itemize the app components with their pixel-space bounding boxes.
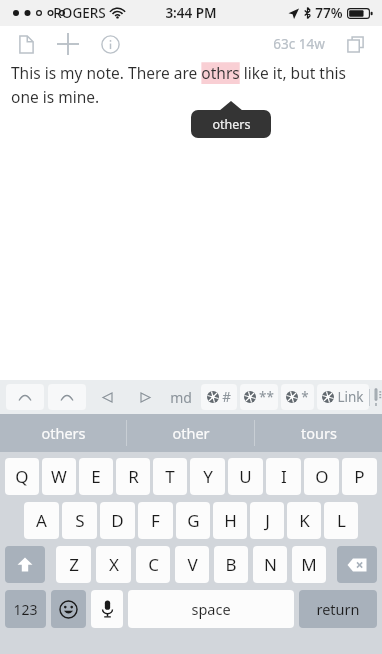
staticText: D bbox=[111, 509, 124, 532]
button[interactable]: Z bbox=[56, 546, 91, 583]
staticText: V bbox=[187, 553, 198, 576]
button[interactable]: W bbox=[42, 458, 76, 495]
button[interactable]: L bbox=[324, 502, 358, 539]
button[interactable]: Add bbox=[52, 28, 84, 60]
staticText: A bbox=[36, 509, 47, 532]
button[interactable]: Emoji bbox=[51, 590, 86, 628]
staticText: X bbox=[109, 553, 119, 576]
staticText: Z bbox=[69, 553, 79, 576]
staticText: M bbox=[301, 553, 317, 576]
staticText: ROGERS bbox=[53, 4, 106, 22]
staticText: Link bbox=[337, 388, 364, 406]
button[interactable]: md bbox=[164, 384, 198, 410]
button[interactable]: space bbox=[128, 590, 294, 628]
staticText: B bbox=[225, 553, 237, 576]
button[interactable]: others bbox=[0, 414, 126, 452]
button[interactable] bbox=[48, 384, 86, 410]
button[interactable]: Dictate bbox=[91, 590, 123, 628]
button[interactable]: Delete bbox=[337, 546, 377, 583]
button[interactable]: A bbox=[24, 502, 59, 539]
button[interactable]: K bbox=[287, 502, 321, 539]
staticText: space bbox=[191, 599, 231, 619]
staticText: L bbox=[337, 509, 346, 532]
button[interactable]: * bbox=[281, 384, 314, 410]
button[interactable]: ** bbox=[240, 384, 278, 410]
staticText: N bbox=[264, 553, 277, 576]
button[interactable]: others bbox=[191, 110, 271, 138]
staticText: md bbox=[170, 388, 192, 407]
button[interactable]: E bbox=[79, 458, 113, 495]
staticText: # bbox=[222, 388, 231, 406]
staticText: 63c 14w bbox=[273, 35, 325, 53]
staticText: E bbox=[91, 465, 101, 488]
staticText: K bbox=[299, 509, 310, 532]
button[interactable]: Shift bbox=[5, 546, 45, 583]
staticText: ** bbox=[259, 388, 274, 406]
button[interactable]: D bbox=[100, 502, 135, 539]
button[interactable]: I bbox=[266, 458, 301, 495]
button[interactable]: N bbox=[253, 546, 287, 583]
staticText: T bbox=[165, 465, 175, 488]
button[interactable]: Link bbox=[317, 384, 369, 410]
button[interactable]: Y bbox=[190, 458, 225, 495]
staticText: * bbox=[301, 388, 309, 406]
staticText: R bbox=[128, 465, 139, 488]
staticText: U bbox=[239, 465, 252, 488]
button[interactable]: New note bbox=[10, 28, 42, 60]
button[interactable]: Share bbox=[339, 28, 371, 60]
staticText: 3:44 PM bbox=[165, 4, 217, 22]
button[interactable]: J bbox=[250, 502, 284, 539]
button[interactable]: M bbox=[292, 546, 326, 583]
staticText: other bbox=[172, 423, 210, 443]
staticText: others bbox=[41, 423, 86, 443]
button[interactable]: 63c 14w bbox=[270, 32, 328, 56]
button[interactable]: S bbox=[62, 502, 97, 539]
button[interactable] bbox=[6, 384, 44, 410]
button[interactable]: Q bbox=[5, 458, 39, 495]
staticText: W bbox=[51, 465, 67, 488]
staticText: H bbox=[224, 509, 237, 532]
button[interactable]: 123 bbox=[5, 590, 46, 628]
staticText: Q bbox=[15, 465, 29, 488]
staticText: tours bbox=[301, 423, 337, 443]
staticText: O bbox=[315, 465, 329, 488]
button[interactable]: Info bbox=[94, 28, 126, 60]
staticText: return bbox=[316, 599, 360, 619]
button[interactable]: O bbox=[304, 458, 339, 495]
staticText: Y bbox=[203, 465, 213, 488]
button[interactable]: # bbox=[201, 384, 237, 410]
button[interactable]: R bbox=[116, 458, 150, 495]
button[interactable]: G bbox=[176, 502, 210, 539]
staticText: others bbox=[212, 116, 251, 133]
button[interactable]: C bbox=[136, 546, 170, 583]
staticText: S bbox=[75, 509, 85, 532]
button[interactable]: V bbox=[175, 546, 209, 583]
button[interactable] bbox=[90, 384, 124, 410]
button[interactable]: H bbox=[213, 502, 247, 539]
button[interactable]: tours bbox=[255, 414, 382, 452]
staticText: C bbox=[148, 553, 159, 576]
staticText: I bbox=[281, 465, 287, 488]
staticText: F bbox=[151, 509, 160, 532]
staticText: P bbox=[354, 465, 365, 488]
button[interactable]: F bbox=[138, 502, 173, 539]
button[interactable]: B bbox=[214, 546, 248, 583]
staticText: 77% bbox=[315, 4, 343, 22]
button[interactable]: X bbox=[96, 546, 131, 583]
button[interactable]: return bbox=[299, 590, 377, 628]
staticText: G bbox=[187, 509, 200, 532]
staticText: 123 bbox=[13, 600, 38, 619]
staticText: J bbox=[265, 509, 270, 532]
button[interactable]: T bbox=[153, 458, 187, 495]
button[interactable] bbox=[128, 384, 162, 410]
button[interactable]: U bbox=[228, 458, 263, 495]
button[interactable]: other bbox=[127, 414, 254, 452]
staticText: This is my note. There are othrs like it… bbox=[11, 62, 370, 107]
button[interactable]: P bbox=[342, 458, 377, 495]
